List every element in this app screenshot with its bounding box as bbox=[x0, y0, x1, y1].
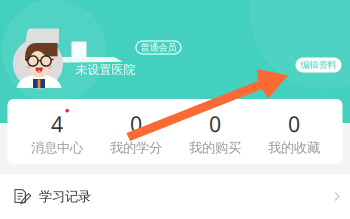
button[interactable]: 编辑资料 bbox=[295, 57, 341, 72]
staticText: 4 bbox=[51, 110, 63, 138]
staticText: 0 bbox=[209, 110, 221, 138]
staticText: 0 bbox=[130, 110, 142, 138]
staticText: 0 bbox=[288, 110, 300, 138]
staticText: 我的购买 bbox=[189, 140, 241, 156]
staticText: 未设置医院 bbox=[75, 62, 135, 77]
staticText: 我的收藏 bbox=[268, 140, 320, 156]
button[interactable]: 4 bbox=[17, 97, 96, 166]
staticText: 消息中心 bbox=[31, 140, 83, 156]
button[interactable]: 0 bbox=[175, 97, 254, 166]
button[interactable]: 0 bbox=[254, 97, 333, 166]
staticText: 普通会员 bbox=[140, 42, 176, 53]
button[interactable]: 0 bbox=[96, 97, 175, 166]
staticText: 编辑资料 bbox=[300, 59, 336, 71]
button[interactable]: 学习记录 bbox=[0, 174, 350, 219]
staticText: 学习记录 bbox=[39, 188, 91, 205]
staticText: 我的学分 bbox=[110, 140, 162, 156]
